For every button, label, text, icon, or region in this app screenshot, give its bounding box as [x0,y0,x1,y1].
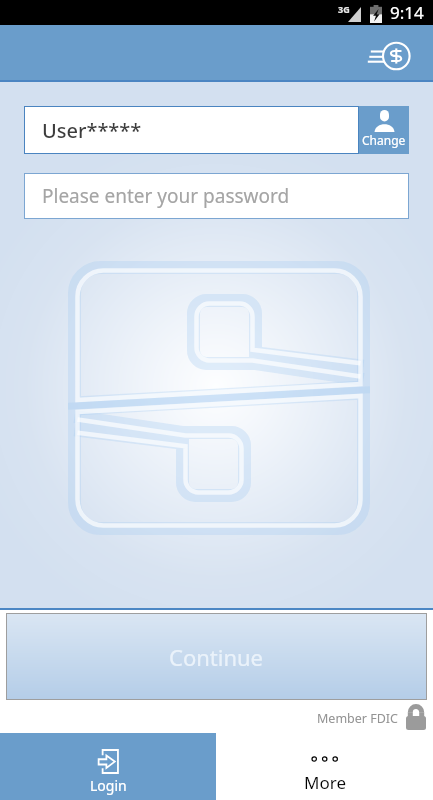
button[interactable]: Login [0,733,216,800]
button[interactable]: Transfer money [366,41,410,71]
button[interactable]: User***** [24,106,359,154]
staticText: Please enter your password [42,183,290,209]
staticText: Login [90,776,127,795]
staticText: More [304,771,346,794]
button[interactable]: Please enter your password [24,173,409,219]
staticText: Member FDIC [317,710,398,727]
button[interactable]: Continue [6,613,427,700]
staticText: Change [362,132,406,148]
staticText: 9:14 [390,1,424,24]
staticText: Continue [169,642,264,672]
button[interactable]: More [216,733,433,800]
staticText: 3G [338,3,350,15]
button[interactable]: Change [359,106,409,154]
staticText: User***** [42,117,142,144]
